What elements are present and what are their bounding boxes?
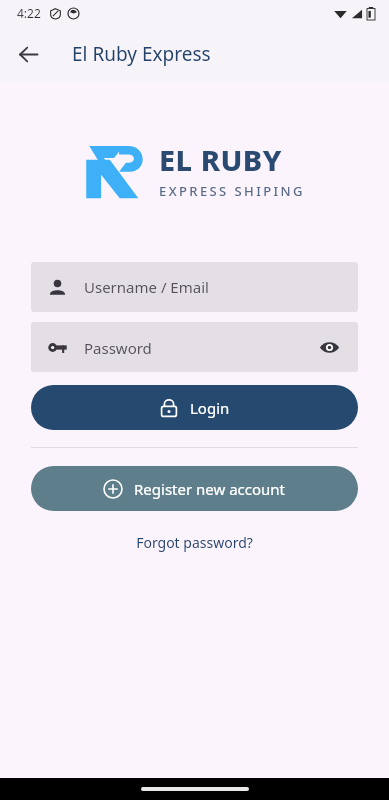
- staticText: Username / Email: [84, 277, 209, 297]
- staticText: EXPRESS SHIPING: [159, 182, 305, 200]
- button[interactable]: Login: [31, 385, 358, 430]
- staticText: EL RUBY: [159, 140, 282, 179]
- other: El Ruby logo: [85, 140, 147, 200]
- button[interactable]: Show password: [310, 328, 348, 366]
- staticText: Forgot password?: [136, 533, 253, 552]
- staticText: Login: [190, 398, 230, 418]
- button[interactable]: Register new account: [31, 466, 358, 511]
- button[interactable]: Username / Email: [31, 262, 358, 312]
- button[interactable]: Forgot password?: [126, 529, 263, 556]
- staticText: El Ruby Express: [72, 41, 211, 67]
- staticText: Register new account: [134, 479, 286, 499]
- button[interactable]: Back: [6, 32, 50, 76]
- button[interactable]: Password: [31, 322, 358, 372]
- staticText: 4:22: [17, 5, 41, 21]
- staticText: Password: [84, 338, 152, 358]
